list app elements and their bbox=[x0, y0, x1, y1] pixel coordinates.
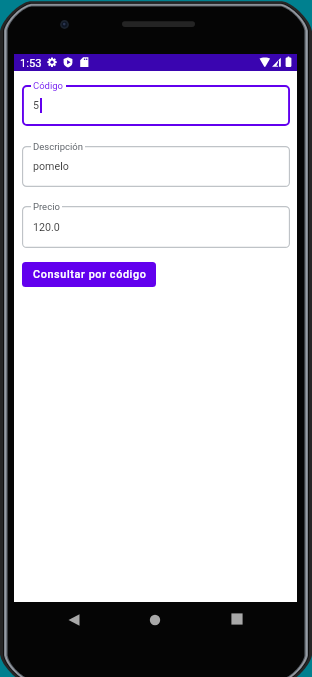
button[interactable]: Consultar por código bbox=[22, 262, 156, 287]
button[interactable]: Código bbox=[22, 85, 290, 126]
staticText: 120.0 bbox=[33, 221, 60, 234]
staticText: Descripción bbox=[33, 141, 83, 152]
staticText: Precio bbox=[33, 201, 60, 212]
staticText: pomelo bbox=[33, 160, 69, 173]
staticText: 5 bbox=[33, 99, 40, 112]
button[interactable]: Precio bbox=[22, 206, 290, 248]
button[interactable]: Recent apps bbox=[219, 601, 255, 637]
staticText: 1:53 bbox=[20, 57, 42, 70]
staticText: Consultar por código bbox=[33, 268, 147, 281]
button[interactable]: Back bbox=[56, 602, 92, 638]
button[interactable]: Descripción bbox=[22, 146, 290, 187]
button[interactable]: Home bbox=[137, 602, 173, 638]
staticText: Código bbox=[33, 80, 64, 91]
